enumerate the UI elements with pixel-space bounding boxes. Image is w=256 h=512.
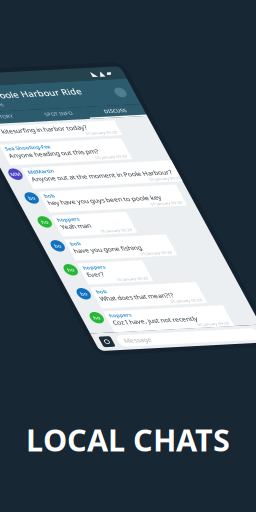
staticText: LOCAL CHATS	[26, 419, 230, 460]
staticText: SPOT INFO	[95, 172, 151, 186]
staticText: Anyone heading out this pm?	[0, 257, 161, 275]
staticText: 05 January 09:28	[149, 275, 212, 286]
staticText: Sea Shooting-Fox	[0, 243, 72, 257]
staticText: Poole · 12%	[0, 145, 25, 159]
staticText: 05 January 09:28	[155, 221, 218, 231]
button[interactable]: Sea Shooting-Fox	[0, 240, 256, 295]
staticText: Sea - Poole Harbour Ride	[0, 119, 191, 144]
button[interactable]: HISTORY	[0, 167, 66, 194]
staticText: Anyone out at the moment in Poole Harbou…	[1, 312, 256, 330]
button[interactable]: bo	[0, 349, 256, 404]
staticText: HISTORY	[0, 172, 32, 186]
staticText: Yeah man	[8, 421, 68, 439]
button[interactable]: DISCUSS	[180, 167, 256, 194]
staticText: 05 January 09:28	[81, 439, 144, 449]
staticText: e kitesurfing in harbor today?	[0, 203, 164, 221]
button[interactable]: ho	[0, 404, 256, 458]
button[interactable]: e kitesurfing in harbor today?	[0, 200, 256, 240]
button[interactable]: SPOT INFO	[66, 167, 180, 194]
button[interactable]: MM	[0, 295, 256, 349]
